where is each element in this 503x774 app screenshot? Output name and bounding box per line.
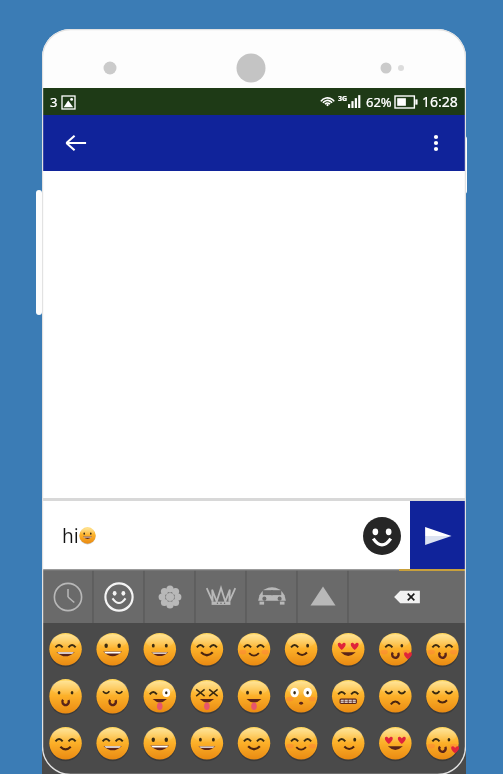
staticText: hi [62,523,79,549]
button[interactable]: hi [42,501,354,570]
button[interactable]: Objects [195,570,246,623]
button[interactable]: Back [54,121,98,165]
button[interactable]: More options [416,123,456,163]
button[interactable]: Travel [246,570,297,623]
button[interactable]: Backspace [348,570,466,623]
button[interactable]: Send [410,501,466,570]
staticText: 3G [338,94,348,104]
button[interactable]: Emoji keyboard [354,508,410,564]
staticText: 62% [366,93,392,111]
button[interactable]: Recent [42,570,93,623]
button[interactable]: Smileys [93,570,144,623]
staticText: 16:28 [422,92,458,111]
staticText: 3 [50,93,58,111]
button[interactable]: Nature [144,570,195,623]
button[interactable]: Symbols [297,570,348,623]
